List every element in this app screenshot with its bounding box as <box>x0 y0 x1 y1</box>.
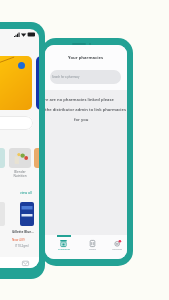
button[interactable]: Messages <box>110 235 125 259</box>
button[interactable]: Orders <box>85 235 100 259</box>
staticText: Your pharmacies <box>68 55 104 61</box>
staticText: There are no pharmacies linked please <box>45 97 114 103</box>
button[interactable] <box>0 116 33 130</box>
staticText: Now 4.89 <box>12 238 25 242</box>
button[interactable] <box>0 56 32 110</box>
staticText: Orders <box>89 248 97 251</box>
button[interactable]: Search for a pharmacy <box>50 70 121 84</box>
other: Orders <box>89 240 96 247</box>
button[interactable]: view all <box>20 190 32 195</box>
staticText: Pharmacies <box>58 248 70 251</box>
staticText: for you <box>74 117 89 123</box>
other: Pharmacies <box>60 240 67 247</box>
staticText: (110.2gm) <box>15 244 29 248</box>
staticText: the distributor admin to link pharmacies <box>45 107 126 113</box>
other: Messages <box>114 240 121 247</box>
staticText: Search for a pharmacy <box>52 75 80 79</box>
staticText: Gillette Blue... <box>12 230 38 234</box>
staticText: Blender Nutrition <box>9 170 31 178</box>
staticText: Messages <box>112 248 123 251</box>
button[interactable]: Pharmacies <box>56 235 71 259</box>
button[interactable]: Messages <box>22 260 29 267</box>
